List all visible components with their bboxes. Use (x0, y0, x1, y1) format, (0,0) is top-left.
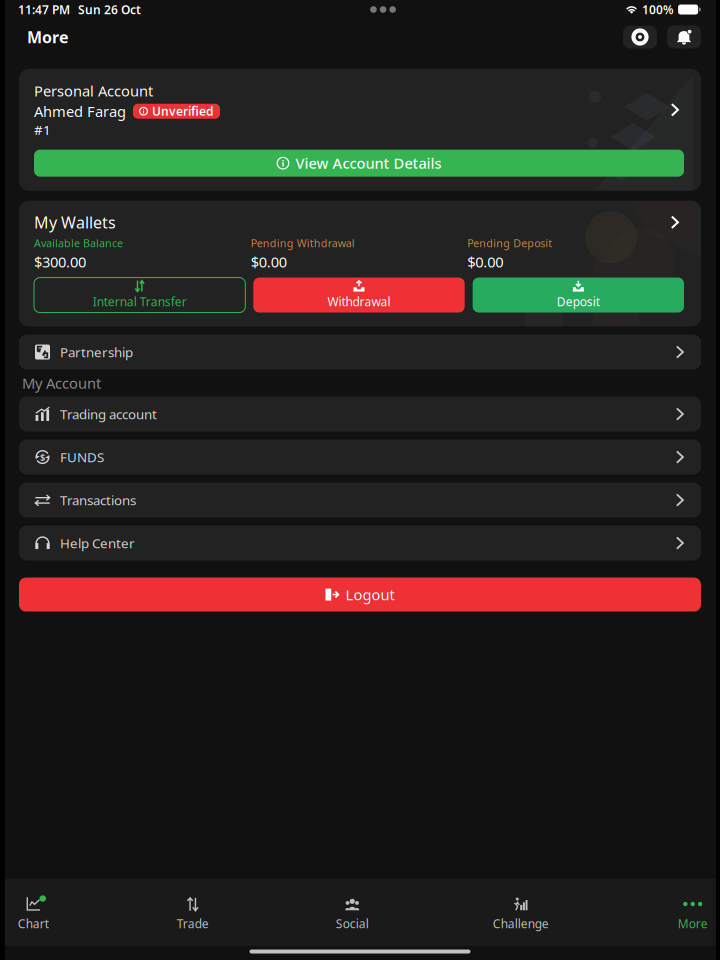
button[interactable]: Logout (19, 578, 701, 612)
staticText: $0.00 (467, 252, 503, 272)
staticText: Chart (18, 915, 49, 931)
button[interactable]: Settings (623, 25, 657, 48)
staticText: More (678, 915, 708, 931)
button[interactable]: Personal Account (19, 69, 701, 191)
button[interactable]: Trade (166, 877, 220, 948)
staticText: $0.00 (251, 252, 287, 272)
staticText: Help Center (60, 534, 135, 552)
button[interactable]: More (666, 877, 720, 948)
staticText: Unverified (152, 103, 214, 119)
button[interactable]: Social (325, 877, 379, 948)
staticText: #1 (34, 121, 51, 139)
button[interactable]: Chart (6, 877, 60, 948)
staticText: Logout (345, 585, 394, 604)
staticText: FUNDS (60, 448, 104, 466)
staticText: $300.00 (34, 252, 86, 272)
staticText: Ahmed Farag (34, 101, 126, 121)
staticText: Challenge (493, 915, 549, 931)
staticText: My Wallets (34, 212, 116, 233)
staticText: Sun 26 Oct (78, 1, 141, 17)
button[interactable]: Challenge (489, 877, 553, 948)
staticText: Deposit (557, 294, 600, 309)
button[interactable]: Help Center (19, 526, 701, 561)
button[interactable]: Trading account (19, 397, 701, 432)
button[interactable]: Withdrawal (253, 278, 465, 313)
staticText: $ (40, 451, 45, 463)
staticText: My Account (22, 373, 101, 393)
staticText: More (27, 26, 69, 48)
staticText: Partnership (60, 343, 133, 361)
staticText: 100% (642, 1, 674, 17)
button[interactable]: Internal Transfer (34, 278, 245, 313)
staticText: Personal Account (34, 81, 153, 100)
staticText: Social (336, 915, 369, 931)
button[interactable]: Partnership (19, 335, 701, 370)
staticText: Transactions (60, 491, 136, 509)
staticText: Pending Withdrawal (251, 236, 355, 250)
staticText: View Account Details (295, 153, 441, 173)
button[interactable]: My Wallets (19, 201, 701, 327)
staticText: Trading account (60, 405, 157, 423)
staticText: Internal Transfer (93, 294, 187, 309)
staticText: 11:47 PM (18, 1, 70, 17)
staticText: Available Balance (34, 236, 123, 250)
staticText: Trade (177, 915, 209, 931)
button[interactable]: Notifications (667, 25, 701, 48)
button[interactable]: Deposit (473, 278, 684, 313)
button[interactable]: $ (19, 440, 701, 475)
staticText: Pending Deposit (467, 236, 552, 250)
staticText: Withdrawal (327, 294, 390, 309)
button[interactable]: Transactions (19, 483, 701, 518)
